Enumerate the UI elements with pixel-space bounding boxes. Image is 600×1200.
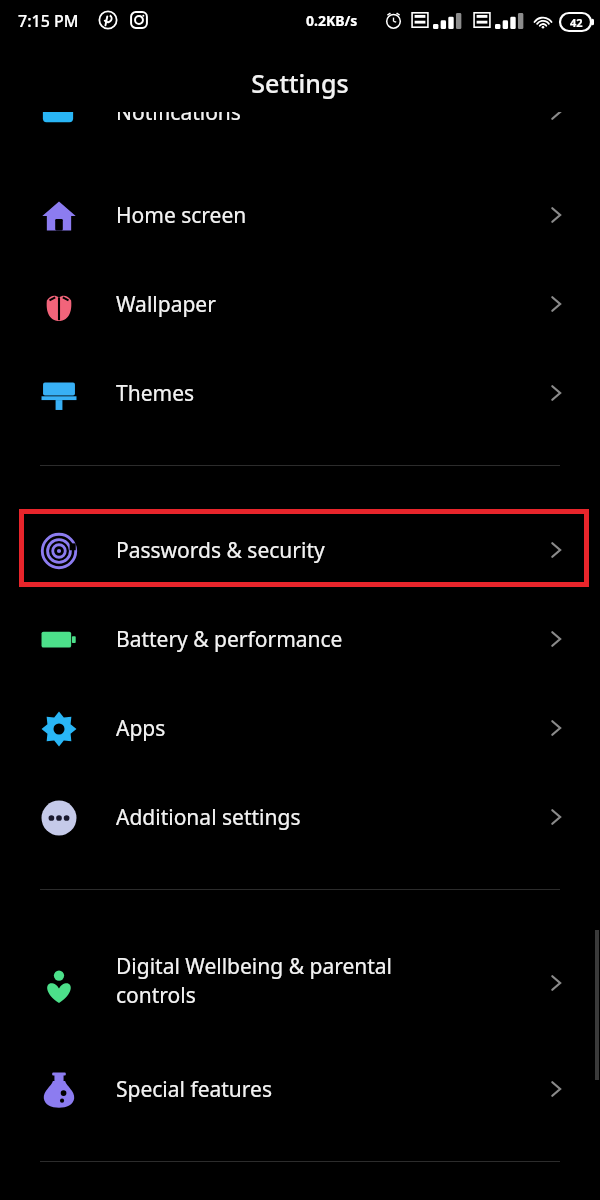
staticText: Settings [251, 66, 349, 100]
staticText: Notifications [116, 112, 241, 122]
button[interactable]: Wallpaper [0, 278, 600, 367]
staticText: Home screen [116, 201, 446, 230]
staticText: 0.2KB/s [306, 11, 358, 30]
staticText: 42 [570, 15, 583, 30]
button[interactable]: Notifications [0, 112, 600, 136]
staticText: Additional settings [116, 803, 446, 832]
button[interactable]: Home screen [0, 189, 600, 278]
button[interactable]: Battery & performance [0, 613, 600, 702]
button[interactable]: Themes [0, 367, 600, 456]
button[interactable]: Passwords & security [0, 524, 600, 613]
staticText: 7:15 PM [18, 10, 79, 32]
staticText: Themes [116, 379, 446, 408]
button[interactable]: Special features [0, 1063, 600, 1152]
staticText: Special features [116, 1075, 446, 1104]
staticText: Apps [116, 714, 446, 743]
button[interactable]: Apps [0, 702, 600, 791]
staticText: Digital Wellbeing & parental controls [116, 952, 446, 1010]
staticText: Passwords & security [116, 536, 446, 565]
staticText: Wallpaper [116, 290, 446, 319]
button[interactable]: Digital Wellbeing & parental controls [0, 948, 600, 1048]
button[interactable]: Additional settings [0, 791, 600, 880]
staticText: Battery & performance [116, 625, 446, 654]
